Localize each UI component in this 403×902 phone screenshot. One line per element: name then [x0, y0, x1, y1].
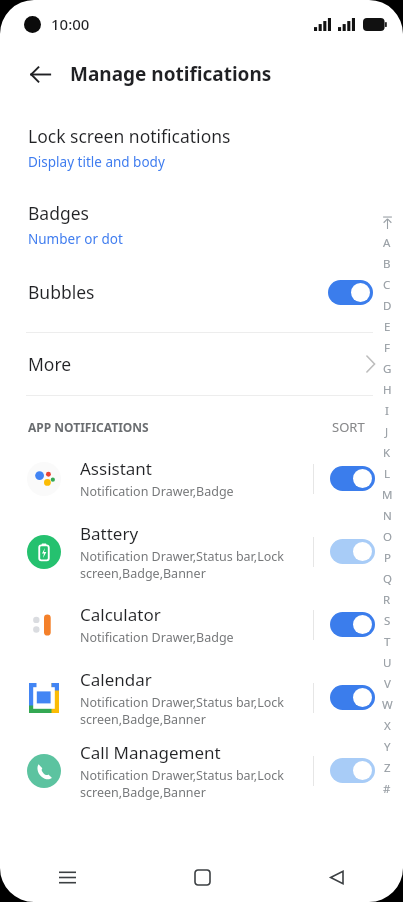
staticText: Battery: [80, 522, 139, 545]
staticText: #: [383, 781, 391, 797]
staticText: E: [384, 319, 391, 335]
staticText: APP NOTIFICATIONS: [28, 419, 149, 435]
staticText: P: [384, 550, 391, 566]
staticText: K: [383, 445, 391, 461]
button[interactable]: Calendar: [0, 661, 403, 734]
staticText: Notification Drawer,Badge: [80, 629, 234, 646]
button[interactable]: More: [0, 333, 403, 395]
button[interactable]: Recent apps: [0, 852, 135, 902]
staticText: G: [383, 361, 392, 377]
staticText: V: [384, 676, 391, 692]
staticText: C: [383, 277, 391, 293]
staticText: U: [383, 655, 392, 671]
staticText: O: [383, 529, 392, 545]
staticText: Bubbles: [28, 280, 95, 304]
button[interactable]: Badges: [0, 199, 403, 250]
button[interactable]: Home: [135, 852, 269, 902]
button[interactable]: Call Management: [0, 734, 403, 807]
staticText: Y: [384, 739, 391, 755]
staticText: D: [383, 298, 392, 314]
button[interactable]: Assistant: [0, 442, 403, 515]
staticText: B: [383, 256, 391, 272]
button[interactable]: Alphabet index: [378, 216, 396, 799]
staticText: Badges: [28, 201, 89, 225]
staticText: H: [383, 382, 392, 398]
button[interactable]: Calculator: [0, 588, 403, 661]
button[interactable]: Bubbles: [0, 270, 403, 314]
staticText: More: [28, 352, 72, 376]
staticText: Notification Drawer,Status bar,Lock scre…: [80, 694, 284, 728]
staticText: L: [384, 466, 391, 482]
button[interactable]: SORT: [328, 414, 369, 440]
staticText: S: [384, 613, 391, 629]
staticText: Number or dot: [28, 230, 123, 248]
staticText: Notification Drawer,Status bar,Lock scre…: [80, 548, 284, 582]
staticText: Manage notifications: [70, 61, 272, 87]
button[interactable]: Back: [269, 852, 403, 902]
staticText: Lock screen notifications: [28, 124, 231, 148]
staticText: Calendar: [80, 668, 152, 691]
staticText: N: [383, 508, 392, 524]
staticText: I: [385, 403, 389, 419]
staticText: Display title and body: [28, 153, 165, 171]
button[interactable]: Battery: [0, 515, 403, 588]
staticText: Z: [384, 760, 391, 776]
staticText: SORT: [332, 418, 365, 436]
staticText: Assistant: [80, 457, 152, 480]
staticText: M: [382, 487, 393, 503]
staticText: 10:00: [51, 14, 90, 34]
staticText: Notification Drawer,Status bar,Lock scre…: [80, 767, 284, 801]
staticText: Notification Drawer,Badge: [80, 483, 234, 500]
staticText: Call Management: [80, 741, 221, 764]
staticText: Q: [383, 571, 392, 587]
staticText: Calculator: [80, 603, 161, 626]
staticText: R: [383, 592, 391, 608]
button[interactable]: Lock screen notifications: [0, 122, 403, 173]
staticText: T: [384, 634, 391, 650]
button[interactable]: Back: [20, 54, 60, 94]
staticText: A: [383, 235, 391, 251]
staticText: X: [384, 718, 391, 734]
staticText: J: [385, 424, 389, 440]
staticText: F: [384, 340, 390, 356]
staticText: W: [382, 697, 393, 713]
